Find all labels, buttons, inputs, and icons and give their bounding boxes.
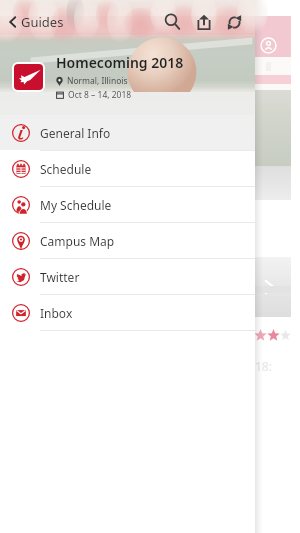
staticText: 18: <box>255 358 272 374</box>
button[interactable]: Search <box>157 0 188 44</box>
staticText: My Schedule <box>40 197 112 213</box>
button[interactable]: Twitter <box>0 259 255 294</box>
staticText: Guides <box>21 13 64 31</box>
button[interactable]: General Info <box>0 115 255 150</box>
staticText: Homecoming 2018 <box>56 53 184 72</box>
button[interactable]: Refresh <box>219 0 250 44</box>
button[interactable]: Share <box>188 0 219 44</box>
staticText: Inbox <box>40 305 73 321</box>
staticText: Campus Map <box>40 233 115 249</box>
staticText: Twitter <box>40 269 80 285</box>
button[interactable]: Guides <box>6 0 64 44</box>
staticText: General Info <box>40 125 111 141</box>
button[interactable]: Inbox <box>0 295 255 330</box>
button[interactable]: Schedule <box>0 151 255 186</box>
button[interactable]: Campus Map <box>0 223 255 258</box>
button[interactable]: Account <box>260 37 277 54</box>
button[interactable]: My Schedule <box>0 187 255 222</box>
staticText: Oct 8 – 14, 2018 <box>68 89 132 100</box>
staticText: Normal, Illinois <box>67 75 128 87</box>
staticText: Schedule <box>40 161 92 177</box>
